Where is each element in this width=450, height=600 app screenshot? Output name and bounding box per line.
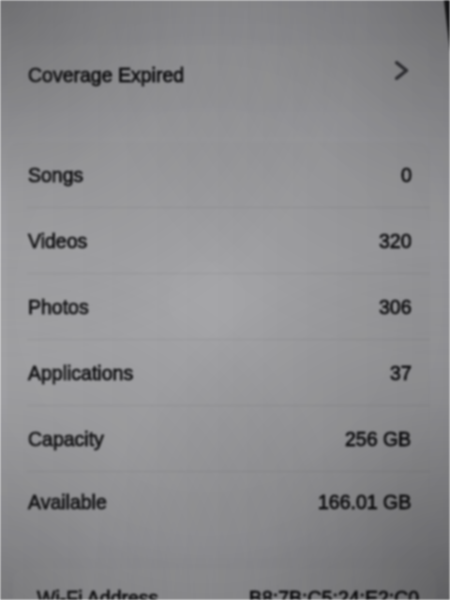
staticText: 306 (379, 296, 412, 318)
staticText: Capacity (28, 428, 104, 450)
staticText: Videos (28, 230, 88, 252)
staticText: 306 (379, 296, 412, 318)
staticText: B8:7B:C5:24:E2:C0 (249, 587, 420, 600)
staticText: 166.01 GB (318, 491, 412, 513)
staticText: B8:7B:C5:24:E2:C0 (249, 587, 420, 600)
staticText: Available (28, 491, 107, 513)
staticText: 320 (379, 230, 412, 252)
staticText: Applications (28, 362, 134, 384)
staticText: 320 (379, 230, 412, 252)
button[interactable]: Videos (7, 208, 430, 273)
button[interactable]: Photos (7, 274, 430, 339)
staticText: 0 (401, 164, 412, 186)
staticText: Available (28, 491, 107, 513)
staticText: Photos (28, 296, 89, 318)
staticText: Applications (28, 362, 134, 384)
button[interactable]: Capacity (7, 406, 430, 471)
button[interactable]: Songs (7, 142, 430, 207)
button[interactable]: Applications (7, 340, 430, 405)
staticText: 0 (401, 164, 412, 186)
staticText: Coverage Expired (28, 64, 185, 86)
button[interactable]: Coverage Expired (7, 45, 430, 104)
staticText: Wi-Fi Address (37, 587, 159, 600)
other: Open coverage details (395, 62, 408, 79)
staticText: 37 (390, 362, 412, 384)
staticText: 256 GB (345, 428, 412, 450)
staticText: 256 GB (345, 428, 412, 450)
staticText: Photos (28, 296, 89, 318)
staticText: Wi-Fi Address (37, 587, 159, 600)
staticText: Songs (28, 164, 84, 186)
staticText: Songs (28, 164, 84, 186)
staticText: 166.01 GB (318, 491, 412, 513)
button[interactable]: Wi-Fi Address (13, 569, 436, 600)
staticText: Capacity (28, 428, 104, 450)
button[interactable]: Available (7, 472, 430, 531)
staticText: Coverage Expired (28, 64, 185, 86)
staticText: Videos (28, 230, 88, 252)
staticText: 37 (390, 362, 412, 384)
